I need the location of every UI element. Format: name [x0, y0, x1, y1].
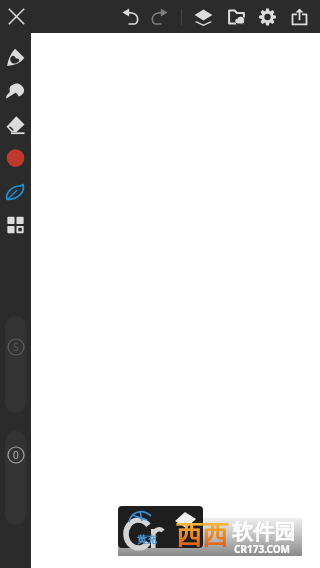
button[interactable]: Opacity: [7, 446, 25, 464]
button[interactable]: Gallery: [222, 2, 251, 32]
button[interactable]: Brush: [0, 40, 31, 74]
button[interactable]: Eraser: [0, 108, 31, 142]
button[interactable]: Layers: [189, 2, 218, 32]
button[interactable]: More tools: [0, 208, 31, 242]
button[interactable]: Close: [2, 0, 31, 33]
staticText: 0: [13, 448, 19, 462]
staticText: 西西: [176, 519, 228, 552]
staticText: 黄充: [137, 533, 157, 546]
button[interactable]: Share: [285, 2, 314, 32]
staticText: 软件园: [232, 519, 295, 545]
staticText: CR173.COM: [234, 542, 291, 556]
button[interactable]: Redo: [145, 2, 174, 32]
button[interactable]: Undo: [116, 2, 145, 32]
button[interactable]: Brush size: [7, 338, 25, 356]
staticText: S: [13, 340, 19, 354]
button[interactable]: Leaf tool: [0, 175, 31, 209]
button[interactable]: Settings: [253, 2, 282, 32]
button[interactable]: Smudge: [0, 74, 31, 108]
button[interactable]: Color: [0, 141, 31, 175]
